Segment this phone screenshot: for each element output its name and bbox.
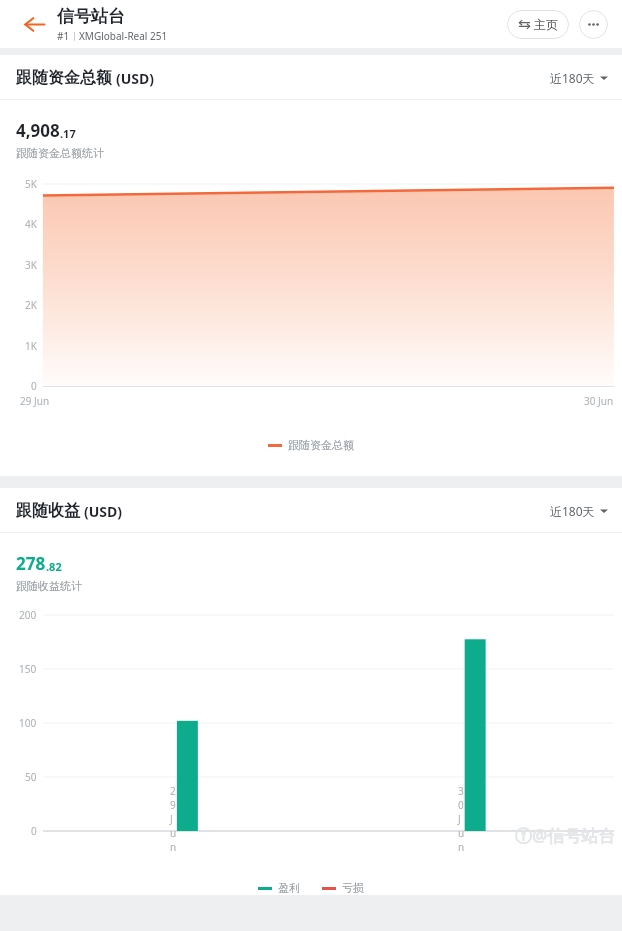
staticText: 4K (25, 217, 37, 231)
staticText: 2K (25, 298, 37, 312)
staticText: 4,908 (16, 119, 60, 142)
button[interactable]: Back (20, 10, 48, 38)
staticText: 跟随资金总额统计 (16, 146, 104, 160)
staticText: .82 (46, 559, 62, 574)
button[interactable]: 主页 (507, 10, 569, 39)
staticText: XMGlobal-Real 251 (79, 29, 168, 43)
staticText: 亏损 (342, 881, 364, 895)
staticText: (USD) (116, 69, 155, 88)
staticText: ⓕ@信号站台 (515, 824, 616, 847)
staticText: 近180天 (550, 70, 595, 86)
staticText: 0 (31, 824, 37, 838)
staticText: 30 Jun (584, 394, 614, 408)
staticText: 3K (25, 258, 37, 272)
staticText: #1 (57, 29, 70, 43)
staticText: 主页 (534, 17, 558, 32)
button[interactable]: 近180天 (548, 499, 610, 523)
staticText: (USD) (84, 502, 123, 521)
button[interactable]: 近180天 (548, 66, 610, 90)
staticText: 100 (19, 716, 37, 730)
staticText: 200 (19, 608, 37, 622)
staticText: 跟随收益统计 (16, 579, 82, 593)
staticText: 29 Jun (20, 394, 50, 408)
button[interactable]: More options (579, 10, 608, 39)
staticText: .17 (60, 126, 76, 141)
staticText: 跟随收益 (16, 501, 80, 521)
staticText: 跟随资金总额 (16, 68, 112, 88)
staticText: 1K (25, 339, 37, 353)
staticText: 盈利 (278, 881, 300, 895)
staticText: 50 (25, 770, 37, 784)
staticText: 近180天 (550, 503, 595, 519)
staticText: 0 (31, 379, 37, 393)
staticText: 信号站台 (57, 6, 125, 27)
staticText: 5K (25, 177, 37, 191)
staticText: 跟随资金总额 (288, 438, 354, 452)
staticText: 278 (16, 552, 46, 575)
staticText: 150 (19, 662, 37, 676)
